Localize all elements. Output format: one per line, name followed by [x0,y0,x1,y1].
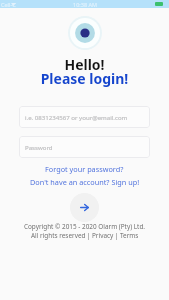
staticText: | [115,231,119,240]
button[interactable]: Don't have an account? Sign up! [26,176,144,188]
staticText: | [87,231,91,240]
button[interactable]: Privacy [92,231,114,240]
button[interactable]: Forgot your password? [41,163,128,175]
staticText: All rights reserved [31,231,86,240]
staticText: Password [25,143,53,151]
staticText: 10:38 AM [73,1,97,8]
button[interactable]: i.e. 0831234567 or your@email.com [19,106,150,128]
button[interactable]: Terms [120,231,139,240]
staticText: Hello! [0,55,169,74]
staticText: i.e. 0831234567 or your@email.com [25,113,128,121]
staticText: Cell-C [1,1,16,8]
button[interactable]: Password [19,136,150,158]
staticText: Copyright © 2015 - 2020 Olarm (Pty) Ltd. [0,222,169,231]
button[interactable]: Submit [70,193,99,222]
staticText: Please login! [0,69,169,88]
